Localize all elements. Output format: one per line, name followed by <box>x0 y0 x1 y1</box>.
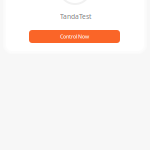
staticText: TandaTest <box>60 12 91 21</box>
button[interactable]: Control Now <box>29 30 120 43</box>
staticText: Control Now <box>60 33 89 40</box>
